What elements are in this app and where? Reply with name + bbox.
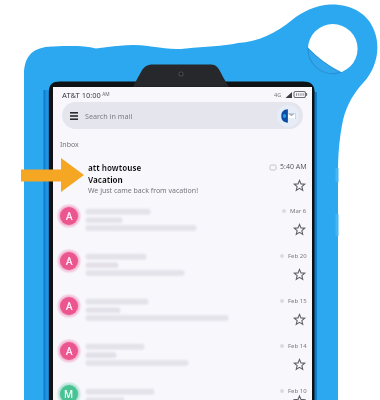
button[interactable]: Open navigation menu (66, 108, 82, 124)
staticText: AT&T 10:00 (62, 90, 101, 100)
button[interactable]: M (53, 382, 312, 400)
staticText: 5:40 AM (280, 162, 307, 172)
button[interactable]: att howtouse (53, 162, 312, 202)
button[interactable]: A (53, 292, 312, 337)
staticText: A (66, 299, 73, 313)
staticText: Mar 6 (290, 207, 307, 215)
staticText: Feb 14 (288, 342, 307, 350)
staticText: Feb 10 (288, 387, 307, 395)
staticText: A (66, 254, 73, 268)
staticText: Feb 20 (288, 252, 307, 260)
staticText: Vacation (88, 174, 123, 185)
staticText: A (66, 209, 73, 223)
button[interactable]: Star conversation (292, 267, 307, 282)
button[interactable]: Star conversation (292, 312, 307, 327)
button[interactable]: Star conversation (292, 222, 307, 237)
staticText: Search in mail (85, 111, 133, 121)
button[interactable]: Star conversation (292, 357, 307, 372)
staticText: 4G (274, 91, 282, 98)
staticText: att howtouse (88, 162, 142, 173)
staticText: Inbox (60, 140, 79, 150)
button[interactable]: A (53, 337, 312, 382)
staticText: Feb 15 (288, 297, 307, 305)
button[interactable]: Account (277, 105, 299, 127)
button[interactable]: A (53, 202, 312, 247)
button[interactable]: Star conversation (292, 178, 307, 193)
button[interactable]: A (53, 247, 312, 292)
button[interactable]: Open navigation menu (62, 102, 303, 129)
staticText: M (64, 387, 74, 400)
staticText: A (66, 344, 73, 358)
staticText: We just came back from vacation! (88, 186, 199, 196)
staticText: AM (101, 91, 110, 98)
